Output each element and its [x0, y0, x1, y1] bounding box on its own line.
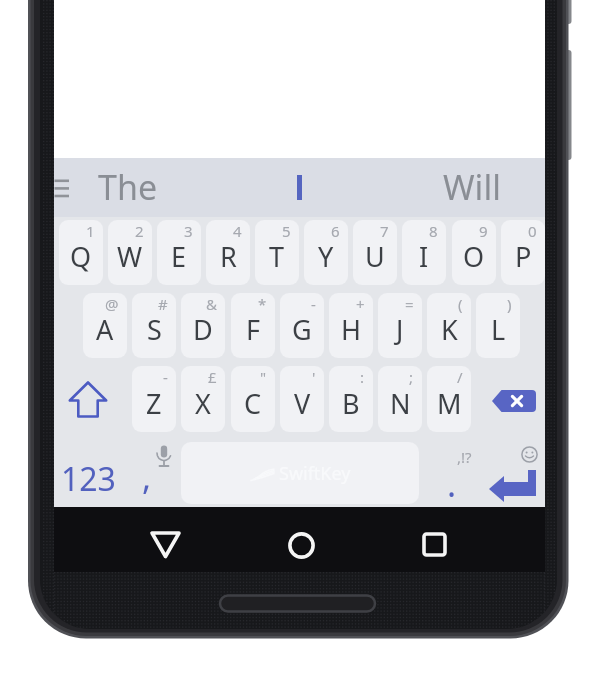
staticText: J	[396, 311, 404, 348]
button[interactable]	[54, 366, 130, 432]
staticText: #	[158, 294, 168, 314]
button[interactable]: N	[378, 366, 422, 432]
staticText: @	[105, 294, 119, 314]
staticText: M	[437, 385, 462, 422]
staticText: R	[220, 238, 237, 275]
staticText: "	[260, 367, 267, 387]
staticText: U	[365, 238, 385, 275]
button[interactable]: Z	[132, 366, 176, 432]
staticText: Q	[70, 238, 92, 275]
button[interactable]: 123	[54, 442, 122, 504]
staticText: Will	[443, 164, 501, 210]
staticText: 123	[61, 457, 116, 501]
button[interactable]: P	[501, 220, 545, 285]
button[interactable]: D	[181, 293, 225, 358]
staticText: G	[292, 311, 312, 348]
button[interactable]: T	[255, 220, 299, 285]
staticText: F	[246, 311, 261, 348]
button[interactable]	[279, 523, 324, 568]
button[interactable]	[412, 523, 457, 568]
staticText: /	[457, 367, 463, 387]
staticText: Z	[146, 385, 162, 422]
staticText: 7	[380, 221, 389, 241]
button[interactable]: V	[280, 366, 324, 432]
button[interactable]: K	[427, 293, 471, 358]
staticText: 9	[479, 221, 488, 241]
button[interactable]: ,	[126, 442, 180, 504]
button[interactable]: C	[231, 366, 275, 432]
staticText: -	[163, 367, 168, 387]
staticText: 0	[528, 221, 537, 241]
staticText: 3	[184, 221, 193, 241]
staticText: D	[193, 311, 213, 348]
staticText: A	[96, 311, 114, 348]
staticText: :	[360, 367, 365, 387]
button[interactable]: Y	[304, 220, 348, 285]
staticText: *	[258, 294, 267, 314]
staticText: The	[98, 164, 158, 210]
staticText: &	[206, 294, 217, 314]
button[interactable]: W	[108, 220, 152, 285]
button[interactable]: S	[132, 293, 176, 358]
staticText: 5	[282, 221, 291, 241]
staticText: L	[491, 311, 506, 348]
staticText: =	[405, 294, 414, 314]
staticText: .	[447, 461, 457, 507]
button[interactable]: The	[78, 158, 178, 216]
button[interactable]	[474, 442, 545, 504]
button[interactable]: B	[329, 366, 373, 432]
staticText: '	[312, 367, 316, 387]
staticText: H	[341, 311, 362, 348]
button[interactable]: R	[206, 220, 250, 285]
staticText: 4	[233, 221, 242, 241]
staticText: 1	[86, 221, 95, 241]
button[interactable]	[471, 366, 545, 432]
button[interactable]: A	[83, 293, 127, 358]
button[interactable]: X	[181, 366, 225, 432]
staticText: S	[147, 311, 162, 348]
staticText: +	[356, 294, 365, 314]
button[interactable]: M	[427, 366, 471, 432]
staticText: T	[269, 238, 285, 275]
button[interactable]: L	[476, 293, 520, 358]
staticText: E	[171, 238, 187, 275]
button[interactable]: I	[402, 220, 446, 285]
staticText: O	[463, 238, 485, 275]
staticText: X	[195, 385, 211, 422]
staticText: ,	[142, 454, 152, 500]
staticText: B	[342, 385, 360, 422]
button[interactable]	[143, 523, 188, 568]
button[interactable]: F	[231, 293, 275, 358]
button[interactable]: Q	[59, 220, 103, 285]
button[interactable]: O	[452, 220, 496, 285]
staticText: Y	[318, 238, 334, 275]
button[interactable]: Will	[422, 158, 522, 216]
button[interactable]: .	[420, 442, 470, 504]
button[interactable]: H	[329, 293, 373, 358]
button[interactable]	[249, 158, 349, 216]
staticText: K	[441, 311, 458, 348]
button[interactable]: E	[157, 220, 201, 285]
staticText: N	[390, 385, 411, 422]
button[interactable]: G	[280, 293, 324, 358]
staticText: ,!?	[457, 447, 472, 467]
staticText: I	[419, 238, 429, 275]
staticText: £	[208, 367, 217, 387]
button[interactable]: U	[353, 220, 397, 285]
staticText: W	[117, 238, 143, 275]
staticText: 8	[429, 221, 438, 241]
button[interactable]: J	[378, 293, 422, 358]
staticText: P	[515, 238, 532, 275]
staticText: )	[507, 294, 512, 314]
staticText: -	[311, 294, 316, 314]
staticText: C	[244, 385, 262, 422]
staticText: V	[294, 385, 311, 422]
staticText: ;	[409, 367, 414, 387]
staticText: (	[458, 294, 463, 314]
staticText: 6	[331, 221, 340, 241]
staticText: 2	[135, 221, 144, 241]
